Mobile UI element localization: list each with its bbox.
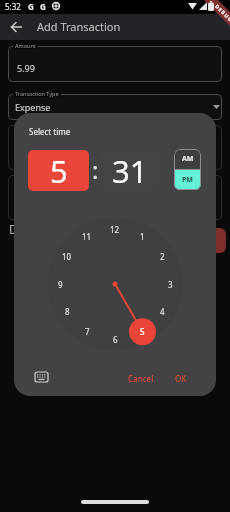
staticText: 1	[140, 231, 145, 242]
staticText: 2	[160, 251, 165, 262]
button[interactable]: 5	[28, 150, 89, 191]
staticText: 3	[168, 279, 173, 290]
staticText: G	[40, 1, 46, 12]
staticText: 4	[160, 306, 165, 317]
button[interactable]	[150, 228, 226, 253]
staticText: Add Transaction	[37, 19, 121, 34]
button[interactable]: Expense	[8, 94, 222, 120]
staticText: PM	[182, 175, 193, 185]
staticText: 12	[110, 224, 120, 235]
button[interactable]: Cancel	[117, 368, 165, 388]
staticText: 6	[113, 334, 118, 345]
staticText: Cancel	[128, 373, 154, 384]
staticText: G	[28, 1, 34, 12]
button[interactable]: OK	[167, 368, 195, 388]
staticText: 9	[58, 279, 63, 290]
staticText: Select time	[29, 126, 71, 137]
staticText: OK	[175, 373, 187, 384]
staticText: Expense	[15, 101, 51, 113]
staticText: 5.99	[17, 62, 35, 74]
staticText: 7	[85, 326, 90, 337]
staticText: Date	[9, 221, 36, 237]
button[interactable]: PM	[174, 170, 201, 190]
staticText: AM	[182, 154, 194, 164]
staticText: 31	[112, 150, 148, 191]
staticText: Transaction Type	[15, 90, 59, 97]
staticText: 8	[65, 306, 70, 317]
staticText: :	[92, 153, 99, 186]
staticText: 5	[140, 326, 145, 337]
staticText: 5	[50, 150, 68, 191]
button[interactable]	[6, 17, 26, 37]
staticText: 11	[82, 231, 92, 242]
staticText: DEBUG	[213, 3, 230, 24]
staticText: 10	[62, 251, 72, 262]
button[interactable]: 5.99	[8, 46, 222, 82]
staticText: Amount	[15, 42, 36, 49]
button[interactable]: AM	[174, 149, 201, 169]
button[interactable]	[28, 366, 54, 388]
button[interactable]: 31	[99, 150, 160, 191]
staticText: 5:32	[5, 1, 21, 12]
